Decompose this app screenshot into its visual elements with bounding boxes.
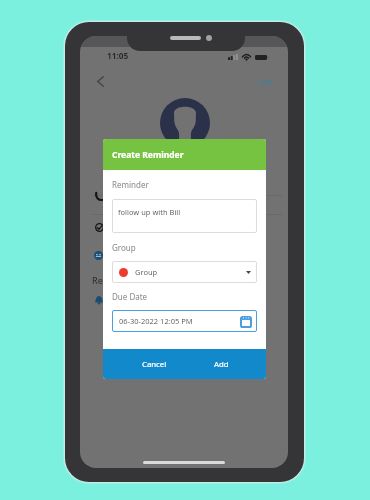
button[interactable]: follow up with Bill bbox=[112, 199, 257, 233]
button[interactable]: Back bbox=[90, 71, 110, 91]
staticText: Reminder bbox=[112, 179, 149, 190]
staticText: follow up with Bill bbox=[118, 207, 181, 217]
button[interactable]: 06-30-2022 12:05 PM bbox=[112, 310, 257, 332]
staticText: Edit bbox=[259, 77, 273, 87]
button[interactable]: Add bbox=[201, 349, 241, 379]
staticText: Group bbox=[112, 242, 136, 253]
staticText: 06-30-2022 12:05 PM bbox=[119, 316, 193, 326]
button[interactable]: Cancel bbox=[131, 349, 177, 379]
staticText: Cancel bbox=[142, 359, 167, 370]
button[interactable]: Edit bbox=[259, 77, 273, 87]
staticText: Create Reminder bbox=[112, 149, 184, 161]
staticText: Due Date bbox=[112, 291, 148, 302]
staticText: Re bbox=[92, 274, 103, 286]
staticText: 11:05 bbox=[107, 50, 129, 61]
other: Pick date bbox=[241, 316, 251, 327]
staticText: Group bbox=[135, 267, 158, 277]
staticText: Add bbox=[214, 359, 229, 370]
button[interactable]: Group bbox=[112, 261, 257, 283]
